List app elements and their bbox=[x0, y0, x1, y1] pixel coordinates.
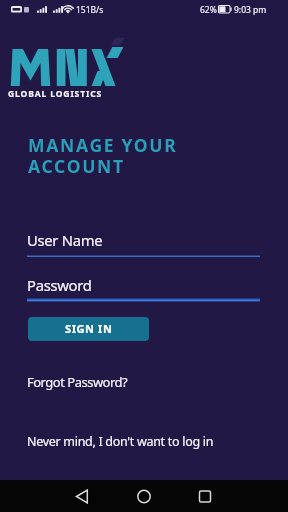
staticText: 9:03 pm bbox=[234, 4, 267, 16]
button[interactable]: SIGN IN bbox=[28, 317, 149, 341]
staticText: Forgot Password? bbox=[27, 373, 128, 391]
staticText: MANAGE YOUR ACCOUNT bbox=[28, 133, 178, 178]
button[interactable] bbox=[0, 480, 96, 512]
staticText: User Name bbox=[27, 230, 103, 250]
staticText: Never mind, I don't want to log in bbox=[27, 433, 214, 450]
staticText: Password bbox=[27, 275, 92, 295]
button[interactable]: Never mind, I don't want to log in bbox=[23, 429, 218, 454]
staticText: SIGN IN bbox=[65, 321, 113, 336]
button[interactable] bbox=[192, 480, 288, 512]
button[interactable]: Forgot Password? bbox=[23, 369, 132, 395]
staticText: GLOBAL LOGISTICS bbox=[8, 88, 103, 100]
button[interactable] bbox=[96, 480, 192, 512]
staticText: 62% bbox=[200, 4, 217, 16]
staticText: 151B/s bbox=[76, 4, 104, 16]
